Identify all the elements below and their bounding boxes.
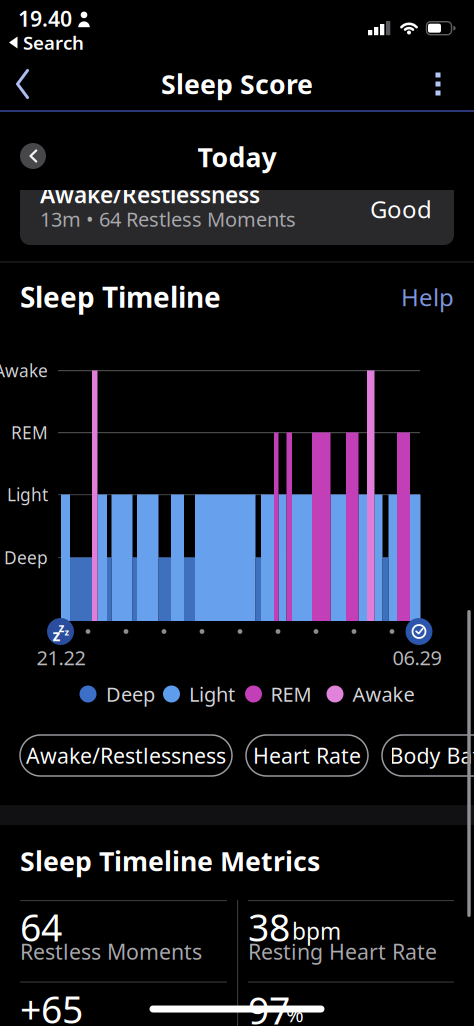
staticText: Deep bbox=[106, 681, 155, 707]
staticText: Sleep Score bbox=[161, 66, 313, 102]
staticText: Awake bbox=[0, 359, 48, 382]
staticText: REM bbox=[11, 421, 48, 444]
staticText: Good bbox=[370, 193, 432, 225]
button[interactable] bbox=[416, 63, 460, 104]
staticText: +65 bbox=[20, 984, 83, 1026]
staticText: 06.29 bbox=[392, 644, 441, 671]
staticText: 38 bbox=[248, 902, 290, 952]
button[interactable] bbox=[2, 62, 46, 106]
staticText: Restless Moments bbox=[20, 937, 202, 966]
staticText: Resting Heart Rate bbox=[248, 937, 437, 966]
staticText: z bbox=[64, 626, 69, 638]
staticText: 97 bbox=[248, 985, 290, 1026]
button[interactable]: Awake/Restlessness bbox=[20, 735, 232, 776]
button[interactable]: Awake/Restlessness bbox=[20, 170, 454, 245]
staticText: Sleep Timeline bbox=[20, 278, 221, 316]
button[interactable]: Heart Rate bbox=[246, 735, 368, 776]
staticText: Light bbox=[189, 681, 235, 707]
staticText: 21.22 bbox=[36, 644, 85, 671]
staticText: z bbox=[52, 624, 60, 646]
staticText: bpm bbox=[292, 916, 341, 946]
staticText: Heart Rate bbox=[253, 741, 361, 770]
staticText: Light bbox=[7, 483, 48, 506]
staticText: 13m • 64 Restless Moments bbox=[40, 206, 296, 232]
staticText: Today bbox=[197, 139, 276, 175]
staticText: Deep bbox=[4, 546, 48, 569]
staticText: Sleep Timeline Metrics bbox=[20, 843, 320, 879]
button[interactable] bbox=[20, 143, 46, 169]
staticText: % bbox=[286, 1000, 304, 1026]
staticText: Body Battery bbox=[389, 741, 474, 770]
staticText: 19.40 bbox=[18, 4, 72, 33]
staticText: REM bbox=[270, 681, 311, 707]
staticText: Help bbox=[401, 281, 454, 313]
staticText: Awake/Restlessness bbox=[40, 179, 260, 209]
staticText: Search bbox=[23, 30, 84, 55]
staticText: Awake bbox=[352, 681, 414, 707]
staticText: z bbox=[58, 619, 64, 635]
staticText: 64 bbox=[20, 902, 62, 952]
button[interactable]: Body Battery bbox=[382, 735, 474, 776]
staticText: Awake/Restlessness bbox=[26, 741, 226, 770]
button[interactable]: Help bbox=[374, 281, 454, 313]
